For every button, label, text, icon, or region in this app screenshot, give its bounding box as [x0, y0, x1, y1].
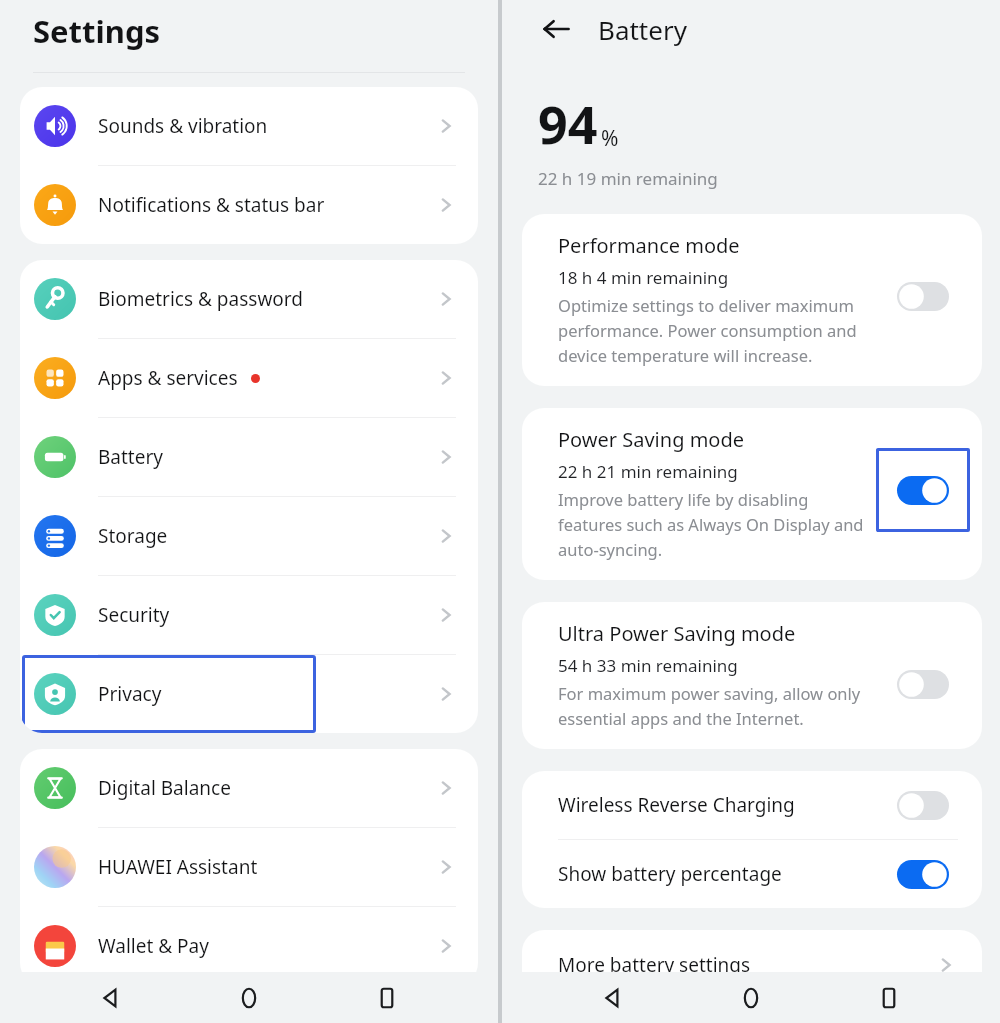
button[interactable]: Power Saving mode [522, 408, 982, 580]
staticText: 94 [538, 88, 598, 159]
button[interactable]: Toggle on [897, 476, 949, 505]
staticText: % [601, 124, 619, 153]
staticText: 54 h 33 min remaining [558, 654, 738, 677]
staticText: 18 h 4 min remaining [558, 266, 729, 289]
staticText: Storage [98, 523, 168, 549]
staticText: Privacy [98, 681, 162, 707]
button[interactable]: Back [536, 9, 576, 49]
button[interactable]: Toggle off [897, 791, 949, 820]
button[interactable]: Wallet & Pay [20, 907, 478, 985]
button[interactable]: Back [84, 972, 138, 1023]
staticText: Wireless Reverse Charging [558, 792, 795, 818]
staticText: 22 h 21 min remaining [558, 460, 738, 483]
button[interactable]: Recent apps [862, 972, 916, 1023]
button[interactable]: Storage [20, 497, 478, 575]
button[interactable]: Home [724, 972, 778, 1023]
staticText: Notifications & status bar [98, 192, 325, 218]
button[interactable]: Toggle off [897, 670, 949, 699]
button[interactable]: HUAWEI Assistant [20, 828, 478, 906]
staticText: Performance mode [558, 232, 740, 259]
staticText: Optimize settings to deliver maximum per… [558, 294, 857, 366]
staticText: Battery [598, 12, 687, 47]
button[interactable]: Wireless Reverse Charging [522, 771, 982, 839]
button[interactable]: Show battery percentage [522, 840, 982, 908]
button[interactable]: More battery settings [522, 930, 982, 1000]
staticText: HUAWEI Assistant [98, 854, 258, 880]
staticText: Power Saving mode [558, 426, 745, 453]
staticText: Show battery percentage [558, 861, 782, 887]
button[interactable]: Sounds & vibration [20, 87, 478, 165]
staticText: Improve battery life by disabling featur… [558, 488, 864, 560]
staticText: 22 h 19 min remaining [538, 167, 718, 190]
button[interactable]: Security [20, 576, 478, 654]
button[interactable]: Apps & services [20, 339, 478, 417]
button[interactable]: Toggle on [897, 860, 949, 889]
staticText: Sounds & vibration [98, 113, 268, 139]
button[interactable]: Performance mode [522, 214, 982, 386]
staticText: Battery [98, 444, 163, 470]
staticText: Wallet & Pay [98, 933, 209, 959]
staticText: For maximum power saving, allow only ess… [558, 682, 861, 729]
button[interactable]: Biometrics & password [20, 260, 478, 338]
staticText: Ultra Power Saving mode [558, 620, 796, 647]
button[interactable]: Recent apps [360, 972, 414, 1023]
staticText: More battery settings [558, 952, 751, 978]
button[interactable]: Notifications & status bar [20, 166, 478, 244]
button[interactable]: Battery [20, 418, 478, 496]
staticText: Biometrics & password [98, 286, 303, 312]
button[interactable]: Privacy [20, 655, 478, 733]
button[interactable]: Digital Balance [20, 749, 478, 827]
staticText: Settings [33, 10, 161, 52]
button[interactable]: Ultra Power Saving mode [522, 602, 982, 749]
staticText: Apps & services [98, 365, 238, 391]
button[interactable]: Toggle off [897, 282, 949, 311]
staticText: Digital Balance [98, 775, 231, 801]
button[interactable]: Back [586, 972, 640, 1023]
button[interactable]: Home [222, 972, 276, 1023]
staticText: Security [98, 602, 170, 628]
